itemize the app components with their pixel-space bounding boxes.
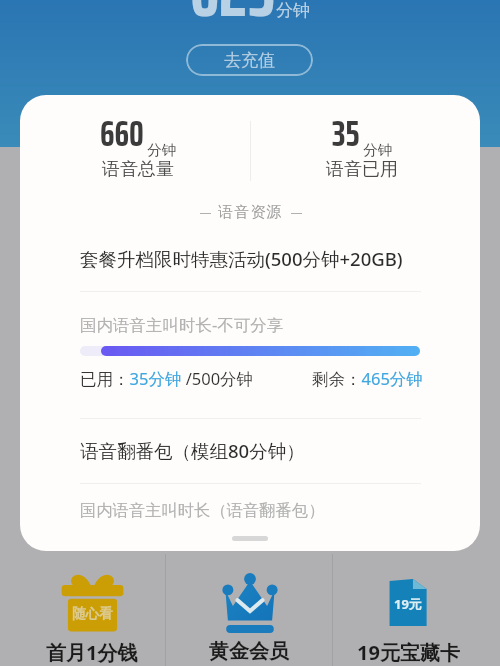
staticText: 660 <box>100 104 144 162</box>
staticText: 分钟 <box>147 141 176 159</box>
button[interactable] <box>333 554 408 666</box>
staticText: 分钟 <box>363 141 392 159</box>
staticText: 语音翻番包（模组80分钟） <box>80 438 305 463</box>
staticText: 19元宝藏卡 <box>357 639 460 666</box>
staticText: 去充值 <box>224 50 275 71</box>
staticText: 首月1分钱 <box>46 639 138 666</box>
staticText: 黄金会员 <box>209 639 289 664</box>
staticText: 语音总量 <box>102 158 174 181</box>
staticText: 随心看 <box>72 605 113 622</box>
staticText: 已用：35分钟 /500分钟 <box>80 367 254 390</box>
staticText: 国内语音主叫时长（语音翻番包） <box>80 500 325 521</box>
other: 19元宝藏卡 <box>388 578 427 628</box>
staticText: 国内语音主叫时长-不可分享 <box>80 313 284 336</box>
staticText: 35 <box>332 104 360 162</box>
staticText: 19元 <box>394 595 422 613</box>
staticText: 分钟 <box>276 0 310 21</box>
button[interactable] <box>0 554 92 666</box>
button[interactable]: 去充值 <box>186 44 313 76</box>
staticText: 剩余：465分钟 <box>312 367 423 390</box>
other: 黄金会员 <box>222 571 278 635</box>
staticText: 625 <box>190 0 275 48</box>
staticText: 语音已用 <box>326 158 398 181</box>
staticText: 语音资源 <box>218 203 283 222</box>
button[interactable] <box>166 554 249 666</box>
staticText: 套餐升档限时特惠活动(500分钟+20GB) <box>80 246 403 271</box>
other: 首月1分钱 <box>61 571 124 634</box>
